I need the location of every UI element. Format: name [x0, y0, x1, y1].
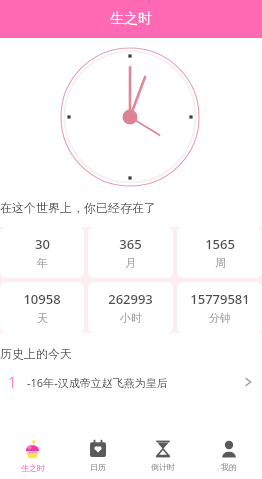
staticText: 月	[125, 256, 136, 270]
staticText: -16年-汉成帝立赵飞燕为皇后	[27, 375, 240, 390]
staticText: 1565	[205, 235, 235, 253]
staticText: 262993	[108, 290, 153, 308]
staticText: 周	[215, 256, 226, 270]
staticText: 我的	[221, 462, 237, 472]
button[interactable]: 365	[88, 227, 173, 278]
button[interactable]: 262993	[88, 282, 173, 333]
staticText: 天	[37, 311, 48, 325]
button[interactable]: 30	[0, 227, 84, 278]
other: 倒计时	[153, 439, 173, 459]
other: 我的	[219, 439, 239, 459]
staticText: 年	[37, 256, 48, 270]
staticText: 历史上的今天	[0, 346, 72, 361]
staticText: 1	[8, 372, 17, 392]
button[interactable]: 生之时	[0, 432, 65, 479]
staticText: 365	[119, 235, 142, 253]
button[interactable]: 1	[0, 369, 262, 395]
staticText: 在这个世界上，你已经存在了	[0, 200, 156, 215]
staticText: 小时	[120, 311, 142, 325]
staticText: 10958	[23, 290, 61, 308]
staticText: 30	[35, 235, 50, 253]
button[interactable]: 15779581	[177, 282, 262, 333]
button[interactable]: 10958	[0, 282, 84, 333]
staticText: 分钟	[209, 311, 231, 325]
staticText: 倒计时	[151, 462, 175, 472]
button[interactable]: 日历	[65, 432, 130, 479]
other: 生之时	[22, 439, 43, 460]
button[interactable]: 1565	[177, 227, 262, 278]
staticText: 生之时	[110, 10, 152, 28]
staticText: 日历	[90, 462, 106, 472]
button[interactable]: 倒计时	[130, 432, 196, 479]
button[interactable]: 我的	[196, 432, 262, 479]
staticText: 15779581	[190, 290, 250, 308]
other: 日历	[88, 439, 108, 459]
staticText: 生之时	[21, 463, 45, 473]
